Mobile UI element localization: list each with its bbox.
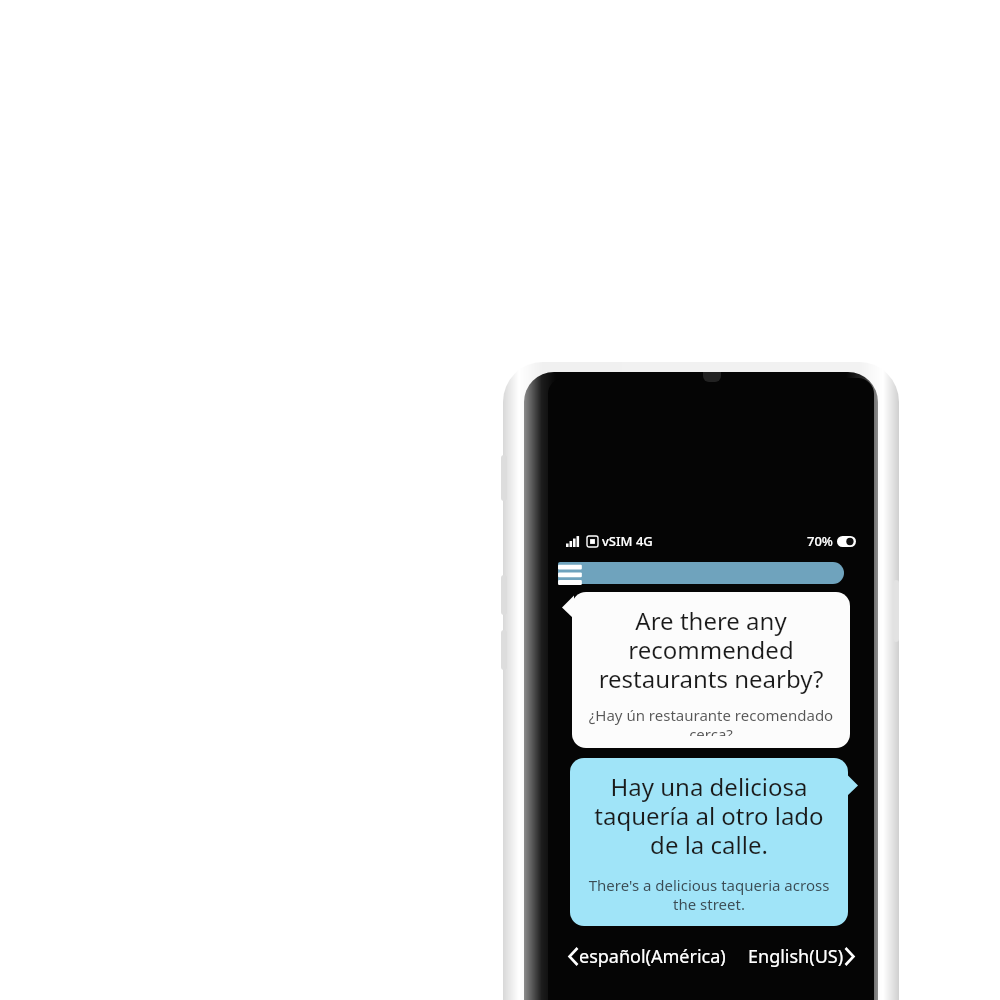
button[interactable]: Hay una deliciosa taquería al otro lado … <box>570 758 848 926</box>
staticText: español(América) <box>579 944 726 969</box>
staticText: There's a delicious taqueria across the … <box>580 875 838 914</box>
staticText: English(US) <box>748 944 844 969</box>
button[interactable]: English(US) <box>744 944 858 969</box>
button[interactable]: español(América) <box>565 944 730 969</box>
staticText: ¿Hay ún restaurante recomendado cerca? <box>582 705 840 736</box>
staticText: vSIM 4G <box>602 532 653 550</box>
staticText: 70% <box>807 532 833 550</box>
button[interactable]: Are there any recommended restaurants ne… <box>572 592 850 748</box>
staticText: Are there any recommended restaurants ne… <box>582 604 840 695</box>
button[interactable]: Menu <box>556 559 590 591</box>
staticText: Hay una deliciosa taquería al otro lado … <box>580 770 838 861</box>
